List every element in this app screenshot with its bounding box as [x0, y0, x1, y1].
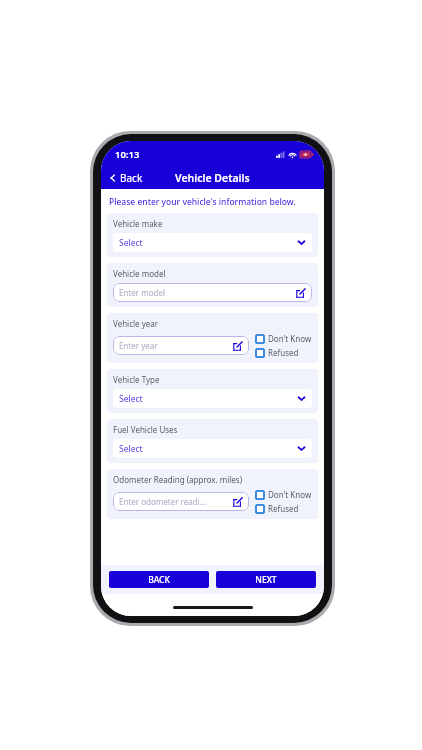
staticText: Enter model — [119, 287, 294, 298]
button[interactable]: Enter model — [113, 283, 312, 302]
staticText: Refused — [268, 347, 299, 358]
staticText: Vehicle Details — [175, 171, 250, 185]
staticText: Select — [119, 443, 297, 455]
staticText: Odometer Reading (approx. miles) — [113, 474, 243, 485]
staticText: Don't Know — [268, 333, 312, 344]
button[interactable]: Refused — [255, 347, 299, 358]
staticText: Vehicle year — [113, 318, 159, 329]
button[interactable]: Don't Know — [255, 333, 312, 344]
other: Edit — [296, 288, 306, 298]
button[interactable]: Select — [113, 233, 312, 252]
other: Edit — [233, 341, 243, 351]
staticText: Back — [120, 171, 143, 185]
staticText: BACK — [148, 574, 170, 586]
other: Edit — [233, 497, 243, 507]
staticText: Enter year — [119, 340, 231, 351]
button[interactable]: Don't Know — [255, 489, 312, 500]
button[interactable]: Select — [113, 439, 312, 458]
button[interactable]: NEXT — [216, 571, 316, 588]
staticText: Don't Know — [268, 489, 312, 500]
button[interactable]: Enter odometer readi... — [113, 492, 249, 511]
button[interactable]: BACK — [109, 571, 209, 588]
staticText: Please enter your vehicle's information … — [109, 196, 296, 208]
staticText: 10:13 — [115, 148, 140, 161]
staticText: Select — [119, 237, 297, 249]
staticText: Enter odometer readi... — [119, 496, 231, 507]
button[interactable]: Select — [113, 389, 312, 408]
staticText: Vehicle Type — [113, 374, 160, 385]
button[interactable]: Refused — [255, 503, 299, 514]
staticText: Fuel Vehicle Uses — [113, 424, 178, 435]
staticText: Select — [119, 393, 297, 405]
staticText: Vehicle model — [113, 268, 166, 279]
staticText: Refused — [268, 503, 299, 514]
button[interactable]: Back — [101, 169, 149, 187]
button[interactable]: Enter year — [113, 336, 249, 355]
staticText: Vehicle make — [113, 218, 163, 229]
staticText: NEXT — [255, 574, 277, 586]
